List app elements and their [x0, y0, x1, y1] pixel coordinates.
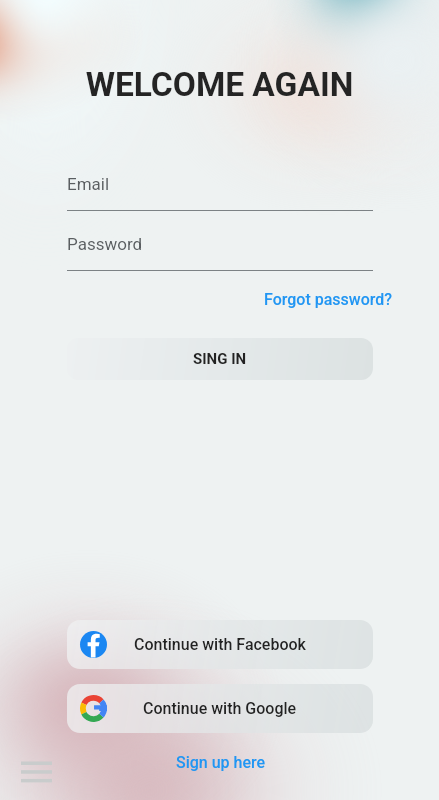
- staticText: SING IN: [193, 350, 247, 368]
- staticText: Continue with Facebook: [134, 635, 306, 654]
- button[interactable]: Continue with Facebook: [67, 620, 373, 669]
- staticText: Email: [67, 174, 110, 194]
- button[interactable]: SING IN: [67, 338, 373, 380]
- staticText: Forgot password?: [264, 290, 393, 309]
- button[interactable]: Menu: [21, 758, 52, 784]
- staticText: WELCOME AGAIN: [0, 65, 439, 104]
- button[interactable]: Password: [67, 234, 373, 271]
- button[interactable]: Sign up here: [176, 753, 266, 772]
- staticText: Continue with Google: [143, 699, 297, 718]
- button[interactable]: Continue with Google: [67, 684, 373, 733]
- button[interactable]: Email: [67, 174, 373, 211]
- staticText: Sign up here: [176, 753, 266, 772]
- staticText: Password: [67, 234, 143, 254]
- button[interactable]: Forgot password?: [264, 290, 393, 309]
